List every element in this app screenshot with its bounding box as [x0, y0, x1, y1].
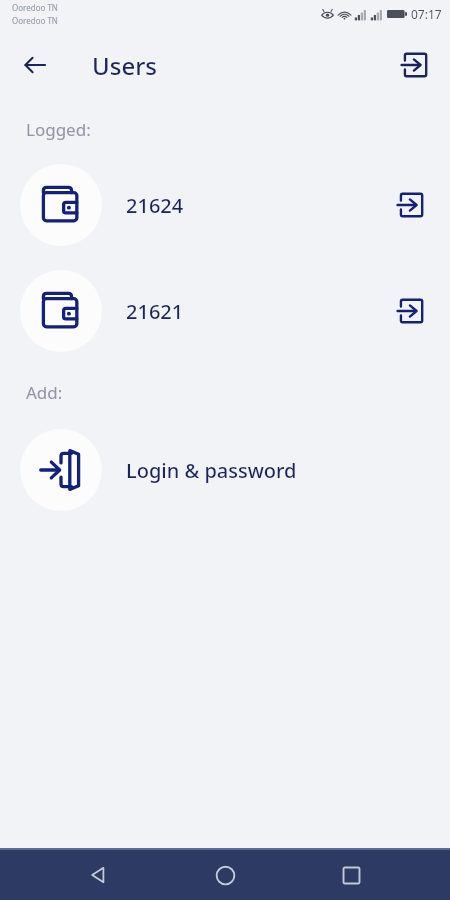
button[interactable]: Back	[12, 42, 58, 88]
staticText: Ooredoo TN	[12, 15, 58, 26]
button[interactable]: Log in as 21624	[385, 179, 437, 231]
button[interactable]: 21624	[0, 163, 450, 247]
staticText: Logged:	[26, 118, 91, 141]
staticText: Ooredoo TN	[12, 2, 58, 13]
staticText: Add:	[26, 381, 63, 404]
staticText: Login & password	[126, 457, 297, 484]
button[interactable]: 21621	[0, 269, 450, 353]
staticText: 21624	[126, 192, 184, 219]
staticText: 21621	[126, 298, 184, 325]
button[interactable]: Back	[72, 850, 126, 900]
staticText: 07:17	[411, 6, 442, 22]
button[interactable]: Log out	[392, 42, 438, 88]
button[interactable]: Recent apps	[324, 850, 378, 900]
button[interactable]: Log in as 21621	[385, 285, 437, 337]
button[interactable]: Home	[198, 850, 252, 900]
staticText: Users	[92, 49, 157, 82]
button[interactable]: Login & password	[0, 428, 450, 512]
